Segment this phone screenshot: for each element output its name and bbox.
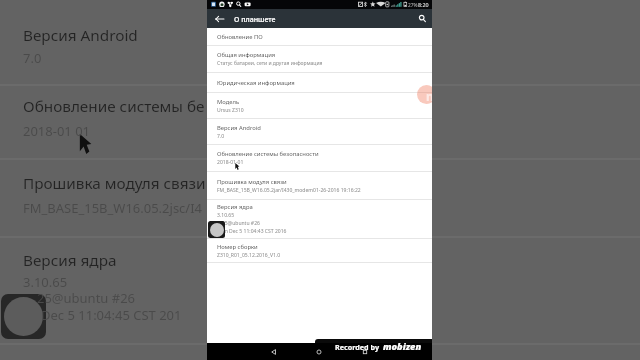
button[interactable]: Обновление ПО xyxy=(207,28,432,45)
staticText: Прошивка модуля связи xyxy=(23,173,206,194)
staticText: О планшете xyxy=(234,15,276,25)
staticText: 7.0 xyxy=(23,49,42,67)
staticText: Обновление системы безопасности xyxy=(217,150,319,158)
staticText: Recorded by xyxy=(335,342,380,352)
staticText: FM_BASE_15B_W16.05.2jar/I430_modem01-26-… xyxy=(217,187,361,194)
staticText: Версия ядра xyxy=(23,250,117,271)
staticText: 2018-01-01 xyxy=(217,159,244,166)
button[interactable]: Home xyxy=(312,345,326,359)
staticText: Версия ядра xyxy=(217,203,253,211)
button[interactable]: Модель xyxy=(207,93,432,118)
button[interactable]: Прошивка модуля связи xyxy=(207,172,432,199)
staticText: 2018-01 01 xyxy=(23,122,91,140)
staticText: 8:20 xyxy=(418,1,429,8)
staticText: Общая информация xyxy=(217,51,276,59)
staticText: Прошивка модуля связи xyxy=(217,178,287,186)
staticText: Версия Android xyxy=(217,124,261,132)
staticText: 3.10.65 xyxy=(217,212,235,219)
staticText: Юридическая информация xyxy=(217,79,295,87)
staticText: Версия Android xyxy=(23,25,138,46)
button[interactable]: Back xyxy=(210,9,228,28)
button[interactable]: Версия Android xyxy=(207,119,432,144)
button[interactable]: Back xyxy=(267,345,281,359)
staticText: 25@ubuntu #26 xyxy=(37,289,136,307)
staticText: Статус батареи, сети и другая информация xyxy=(217,60,323,67)
staticText: Dec 5 11:04:45 CST 201 xyxy=(41,306,182,324)
staticText: 27% xyxy=(408,2,418,9)
staticText: 3.10.65 xyxy=(23,273,68,291)
button[interactable]: Юридическая информация xyxy=(207,73,432,92)
staticText: m xyxy=(426,88,432,104)
staticText: Обновление ПО xyxy=(217,33,263,41)
staticText: 7.0 xyxy=(217,133,225,140)
staticText: mobizen xyxy=(383,340,422,353)
staticText: FM_BASE_15B_W16.05.2jsc/I4 xyxy=(23,199,203,217)
button[interactable]: Mobizen recorder xyxy=(417,85,432,104)
button[interactable]: Обновление системы безопасности xyxy=(207,145,432,171)
staticText: Обновление системы бе xyxy=(23,96,205,117)
button[interactable]: Общая информация xyxy=(207,46,432,72)
staticText: Номер сборки xyxy=(217,243,258,251)
button[interactable]: Recent apps xyxy=(358,345,372,359)
staticText: cc25@ubuntu #26 xyxy=(217,220,260,227)
staticText: Mon Dec 5 11:04:43 CST 2016 xyxy=(217,228,287,235)
staticText: Z310_R01_05.12.2016_V1.0 xyxy=(217,252,281,259)
button[interactable]: Search xyxy=(414,9,430,28)
staticText: Модель xyxy=(217,98,240,106)
button[interactable]: Номер сборки xyxy=(207,239,432,262)
button[interactable]: Версия ядра xyxy=(207,200,432,238)
staticText: Ursus Z310 xyxy=(217,107,244,114)
